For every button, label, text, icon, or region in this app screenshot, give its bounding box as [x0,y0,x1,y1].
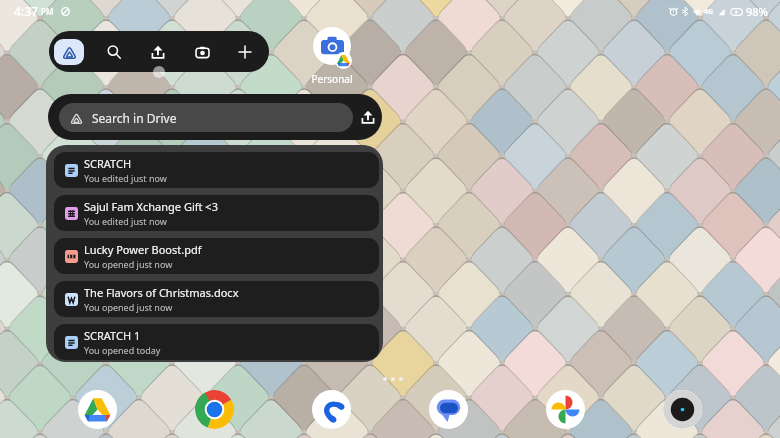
button[interactable]: Search in Drive [59,103,353,132]
button[interactable]: Camera [663,390,702,429]
button[interactable]: The Flavors of Christmas.docx [54,281,379,317]
staticText: You edited just now [84,172,167,184]
staticText: Sajul Fam Xchange Gift <3 [84,199,218,214]
staticText: Search in Drive [92,110,177,126]
button[interactable]: Sajul Fam Xchange Gift <3 [54,195,379,231]
button[interactable]: Drive [78,390,117,429]
staticText: PM [41,6,54,17]
staticText: You opened just now [84,258,173,270]
staticText: 4G [704,7,714,17]
button[interactable]: Scan document [189,39,215,65]
staticText: You edited just now [84,215,167,227]
button[interactable]: Upload file [354,103,382,131]
button[interactable]: SCRATCH [54,152,379,188]
staticText: You opened just now [84,301,173,313]
staticText: 4:37 [14,3,38,19]
button[interactable]: Search [101,39,127,65]
button[interactable]: Phone [312,390,351,429]
staticText: SCRATCH [84,156,132,171]
staticText: You opened today [84,344,161,356]
staticText: Personal [303,72,361,86]
button[interactable]: Chrome [195,390,234,429]
staticText: SCRATCH 1 [84,328,141,343]
button[interactable]: Lucky Power Boost.pdf [54,238,379,274]
button[interactable]: New [232,39,258,65]
button[interactable]: Personal [303,24,361,90]
button[interactable]: Upload [145,39,171,65]
button[interactable]: Drive [54,39,84,65]
button[interactable]: SCRATCH 1 [54,324,379,360]
staticText: The Flavors of Christmas.docx [84,285,239,300]
staticText: Lucky Power Boost.pdf [84,242,202,257]
button[interactable]: Messages [429,390,468,429]
button[interactable]: Photos [546,390,585,429]
staticText: 98% [746,4,768,19]
